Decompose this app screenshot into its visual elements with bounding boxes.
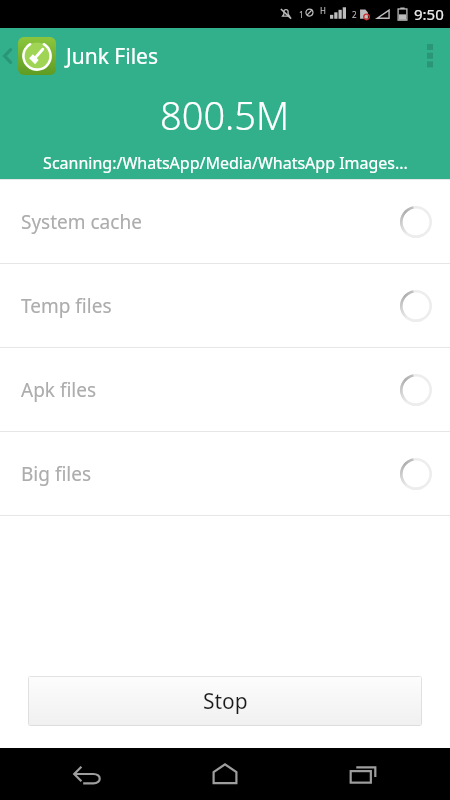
- staticText: Junk Files: [66, 42, 159, 71]
- staticText: Scanning:/WhatsApp/Media/WhatsApp Images…: [43, 152, 408, 174]
- button[interactable]: Back: [38, 748, 138, 800]
- staticText: H: [320, 5, 326, 16]
- staticText: Apk files: [21, 377, 97, 403]
- button[interactable]: Home: [175, 748, 275, 800]
- staticText: Big files: [21, 461, 92, 487]
- button[interactable]: Back: [0, 28, 16, 84]
- button[interactable]: Temp files: [0, 264, 450, 347]
- button[interactable]: Recents: [313, 748, 413, 800]
- staticText: 1: [299, 9, 304, 20]
- button[interactable]: Stop: [28, 676, 422, 726]
- staticText: System cache: [21, 209, 142, 235]
- button[interactable]: System cache: [0, 180, 450, 263]
- button[interactable]: More options: [410, 28, 450, 84]
- staticText: 2: [352, 9, 357, 20]
- button[interactable]: Apk files: [0, 348, 450, 431]
- staticText: 9:50: [414, 4, 444, 24]
- staticText: Temp files: [21, 293, 112, 319]
- staticText: 800.5M: [160, 89, 290, 141]
- button[interactable]: Big files: [0, 432, 450, 515]
- staticText: Stop: [203, 687, 248, 716]
